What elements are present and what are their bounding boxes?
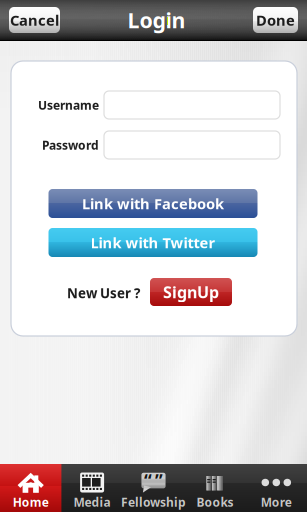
button[interactable]: Done <box>253 7 298 33</box>
staticText: Link with Twitter <box>90 233 215 252</box>
staticText: New User ? <box>67 284 140 302</box>
staticText: Done <box>256 10 295 30</box>
staticText: Media <box>74 494 111 510</box>
button[interactable]: SignUp <box>150 278 232 306</box>
staticText: SignUp <box>163 281 219 303</box>
button[interactable]: Cancel <box>9 7 60 33</box>
staticText: Login <box>127 6 185 34</box>
staticText: More <box>261 494 292 510</box>
staticText: Books <box>196 494 233 510</box>
button[interactable]: Link with Facebook <box>48 189 257 218</box>
staticText: Link with Facebook <box>82 194 224 213</box>
button[interactable]: “ ” <box>123 464 184 512</box>
staticText: Password <box>42 137 99 153</box>
button[interactable]: Link with Twitter <box>48 228 257 257</box>
button[interactable]: More <box>246 464 307 512</box>
button[interactable]: Books <box>184 464 246 512</box>
staticText: Fellowship <box>121 494 186 510</box>
staticText: Cancel <box>10 10 59 30</box>
staticText: “ ” <box>144 469 163 492</box>
staticText: Home <box>13 494 49 510</box>
button[interactable]: Home <box>0 464 61 512</box>
staticText: Username <box>38 97 99 113</box>
button[interactable]: Media <box>61 464 123 512</box>
